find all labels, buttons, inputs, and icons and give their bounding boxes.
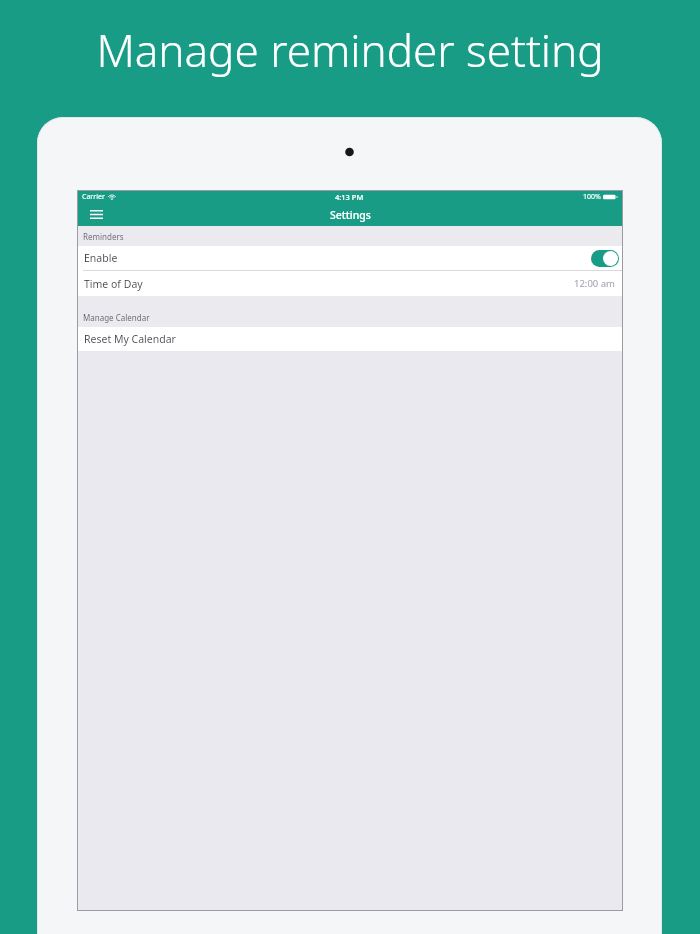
button[interactable]: Time of Day: [77, 271, 623, 296]
staticText: Carrier: [82, 192, 105, 202]
staticText: Enable: [84, 251, 118, 265]
staticText: Manage Calendar: [83, 312, 150, 323]
staticText: Reminders: [83, 231, 124, 242]
staticText: 100%: [583, 192, 601, 202]
staticText: Reset My Calendar: [84, 332, 176, 346]
button[interactable]: Menu: [86, 204, 107, 225]
button[interactable]: Enable: [77, 246, 623, 270]
staticText: Time of Day: [84, 277, 143, 291]
button[interactable]: Enable reminders: [591, 250, 619, 267]
staticText: Manage reminder setting: [0, 20, 700, 80]
button[interactable]: Reset My Calendar: [77, 327, 623, 351]
staticText: Settings: [330, 208, 371, 222]
staticText: 12:00 am: [574, 277, 615, 290]
staticText: 4:13 PM: [335, 192, 364, 202]
